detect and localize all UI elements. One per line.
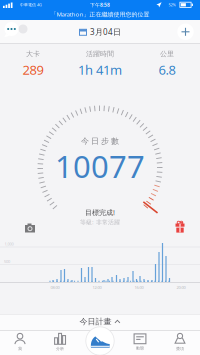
staticText: 下午8:58 [90,1,110,8]
staticText: 1,000 [4,241,13,247]
staticText: 1h 41m [78,61,122,78]
staticText: 動態 [136,346,144,351]
staticText: 10077 [55,145,145,187]
staticText: 活躍時間 [86,50,114,58]
staticText: 289 [22,61,43,78]
button[interactable]: 分析 [42,330,78,354]
button[interactable]: Rewards [175,221,185,233]
staticText: 獎項 [176,346,184,351]
button[interactable]: Start workout [85,326,115,355]
button[interactable]: 動態 [122,330,158,354]
staticText: 20:00 [176,285,185,290]
staticText: 等級: 非常活躍 [80,218,120,226]
staticText: 我 [18,346,22,351]
staticText: 500 [4,259,10,264]
staticText: 中華電信 4G [20,2,42,7]
staticText: 今日計畫 [79,317,111,326]
staticText: 12:00 [92,285,101,290]
button[interactable]: Today plan [0,314,200,329]
staticText: 08:00 [50,285,59,290]
staticText: 大卡 [26,50,40,58]
staticText: 分析 [56,346,64,351]
staticText: 52% [168,2,175,7]
button[interactable]: Camera [24,222,36,233]
staticText: 公里 [160,50,174,58]
button[interactable]: Pick date [79,26,121,37]
button[interactable]: 獎項 [162,330,198,354]
staticText: 3月04日 [90,26,121,37]
button[interactable]: 我 [2,330,38,354]
staticText: 目標完成! [85,208,115,217]
button[interactable]: Add [177,23,194,40]
staticText: 16:00 [134,285,143,290]
staticText: 今日步數 [81,136,119,146]
staticText: 「Marathon」正在繼續使用您的位置 [50,10,149,18]
button[interactable]: Messages [2,22,32,40]
staticText: 6.8 [158,61,175,78]
